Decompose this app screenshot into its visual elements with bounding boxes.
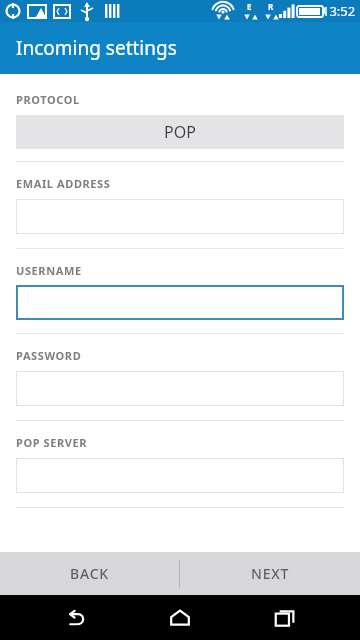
staticText: PASSWORD: [16, 348, 82, 363]
button[interactable]: POP: [16, 115, 344, 149]
staticText: EMAIL ADDRESS: [16, 176, 111, 191]
button[interactable]: NEXT: [180, 552, 360, 595]
button[interactable]: Recent apps: [255, 595, 315, 640]
button[interactable]: [16, 458, 344, 493]
staticText: E: [247, 1, 252, 12]
staticText: 13:52: [322, 2, 356, 20]
staticText: NEXT: [251, 564, 290, 583]
button[interactable]: [16, 371, 344, 406]
button[interactable]: BACK: [0, 552, 179, 595]
staticText: POP: [164, 121, 196, 143]
staticText: PROTOCOL: [16, 92, 80, 107]
button[interactable]: Back: [45, 595, 105, 640]
button[interactable]: Home: [150, 595, 210, 640]
staticText: BACK: [70, 564, 109, 583]
staticText: R: [268, 1, 274, 12]
button[interactable]: [16, 199, 344, 234]
button[interactable]: [16, 285, 344, 320]
staticText: POP SERVER: [16, 435, 88, 450]
staticText: USERNAME: [16, 263, 82, 278]
staticText: Incoming settings: [16, 35, 177, 61]
